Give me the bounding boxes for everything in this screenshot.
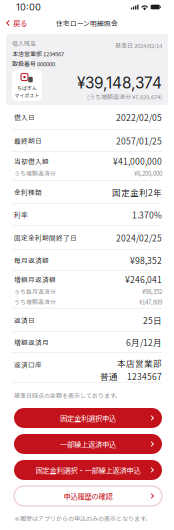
staticText: 25日 xyxy=(143,314,162,326)
staticText: 当初借入額 xyxy=(14,156,49,166)
staticText: 固定金利選択・一部繰上返済申込 xyxy=(35,465,140,475)
staticText: 増額返済月 xyxy=(14,337,49,347)
staticText: 10:00 xyxy=(16,1,41,13)
staticText: ¥98,352 xyxy=(142,287,162,296)
staticText: 固定金利2年 xyxy=(112,186,162,198)
staticText: 6月/12月 xyxy=(126,336,162,348)
staticText: ¥39,148,374 xyxy=(77,74,162,92)
staticText: 返済日 xyxy=(14,315,35,325)
staticText: 返済口座 xyxy=(14,360,42,369)
staticText: 戻る xyxy=(13,18,27,28)
staticText: 本店営業部 xyxy=(117,357,162,369)
button[interactable]: 一部繰上返済申込 xyxy=(14,434,162,454)
staticText: うち増額返済分 xyxy=(14,169,56,177)
staticText: 2024/02/25 xyxy=(116,231,162,244)
staticText: 金利種類 xyxy=(14,187,42,197)
staticText: 利率 xyxy=(14,210,28,220)
staticText: 一部繰上返済申込 xyxy=(60,439,116,449)
button[interactable]: 申込履歴の確認 xyxy=(14,486,162,506)
staticText: 最終期日 xyxy=(14,136,42,146)
staticText: ¥8,200,000 xyxy=(134,169,162,178)
staticText: 基準日 2024/02/14 xyxy=(115,41,162,50)
staticText: うち毎月返済分 xyxy=(14,287,56,296)
staticText: 固定金利選択申込 xyxy=(60,413,116,423)
staticText: 普通 1234567 xyxy=(100,370,162,383)
button[interactable]: 戻る xyxy=(0,15,35,31)
staticText: ※履歴はアプリからの申込のみの表示となります。 xyxy=(14,514,151,523)
staticText: 固定金利期間終了日 xyxy=(14,233,77,243)
staticText: 借入日 xyxy=(14,112,35,122)
staticText: ¥147,689 xyxy=(139,297,162,306)
staticText: 住宅ローン明細照会 xyxy=(56,18,118,28)
staticText: ¥41,000,000 xyxy=(113,155,162,167)
staticText: 1.370% xyxy=(132,208,162,221)
staticText: 取扱番号 000000 xyxy=(12,59,55,68)
staticText: 2022/02/05 xyxy=(116,111,162,123)
staticText: うち増額返済分 xyxy=(14,298,56,306)
staticText: マイポスト xyxy=(14,92,39,99)
staticText: 本店営業部 1234567 xyxy=(12,49,64,58)
staticText: 2057/01/25 xyxy=(116,134,162,147)
button[interactable]: 固定金利選択申込 xyxy=(14,408,162,428)
staticText: 毎月返済額 xyxy=(14,255,49,265)
staticText: (うち増額返済分 ¥7,829,674) xyxy=(87,92,162,101)
staticText: ちばぎん xyxy=(17,84,37,91)
staticText: 増額月返済額 xyxy=(14,274,56,284)
staticText: ¥246,041 xyxy=(125,273,162,285)
staticText: 申込履歴の確認 xyxy=(63,491,112,501)
button[interactable]: 固定金利選択・一部繰上返済申込 xyxy=(14,460,162,480)
button[interactable]: ちばぎん xyxy=(12,70,42,101)
staticText: 基準日時点の金額を表示しております。 xyxy=(14,391,121,400)
staticText: 借入残高 xyxy=(12,39,36,48)
staticText: ¥98,352 xyxy=(130,254,162,266)
